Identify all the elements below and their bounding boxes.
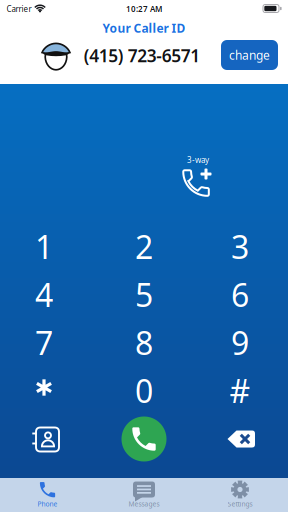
staticText: Settings — [227, 500, 252, 508]
button[interactable]: 0 — [112, 368, 176, 412]
staticText: 3-way — [187, 155, 209, 165]
button[interactable]: 5 — [112, 272, 176, 316]
staticText: 4 — [35, 273, 53, 316]
staticText: 1 — [35, 225, 53, 268]
button[interactable]: 9 — [208, 320, 272, 364]
button[interactable] — [12, 365, 76, 409]
staticText: 2 — [135, 225, 153, 268]
button[interactable]: 3-way call — [174, 152, 222, 202]
staticText: Carrier — [6, 4, 31, 14]
button[interactable]: 1 — [12, 224, 76, 268]
staticText: Phone — [37, 500, 57, 508]
button[interactable]: 8 — [112, 320, 176, 364]
staticText: 5 — [135, 273, 153, 316]
staticText: Messages — [128, 500, 159, 508]
button[interactable]: 2 — [112, 224, 176, 268]
button[interactable]: Call — [121, 416, 166, 461]
staticText: 8 — [135, 321, 153, 364]
button[interactable]: # — [208, 368, 272, 412]
staticText: change — [229, 47, 270, 63]
button[interactable]: 3 — [208, 224, 272, 268]
button[interactable]: Phone — [14, 479, 80, 511]
staticText: 10:27 AM — [126, 4, 162, 14]
button[interactable]: Contacts — [29, 423, 63, 457]
button[interactable]: Messages — [111, 479, 177, 511]
staticText: (415) 723-6571 — [84, 44, 200, 67]
staticText: 0 — [135, 369, 153, 412]
button[interactable]: 4 — [12, 272, 76, 316]
staticText: 7 — [35, 321, 53, 364]
button[interactable]: Delete — [226, 429, 256, 448]
staticText: # — [229, 369, 250, 412]
button[interactable]: 7 — [12, 320, 76, 364]
button[interactable]: 6 — [208, 272, 272, 316]
staticText: 9 — [231, 321, 249, 364]
staticText: Your Caller ID — [102, 20, 185, 36]
button[interactable]: change — [221, 40, 278, 70]
staticText: 3 — [231, 225, 249, 268]
button[interactable]: Settings — [207, 479, 273, 511]
staticText: 6 — [231, 273, 249, 316]
